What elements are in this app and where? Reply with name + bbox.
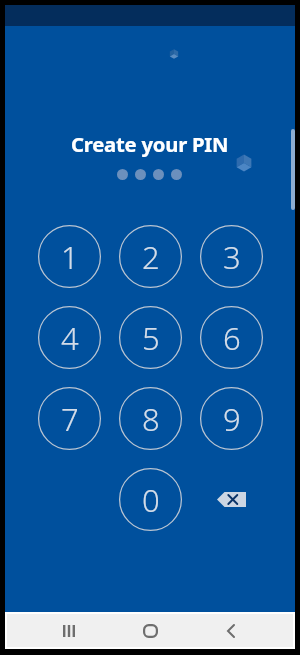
button[interactable]: Back (207, 614, 255, 647)
staticText: 6 (223, 317, 241, 359)
staticText: 2 (142, 236, 160, 278)
button[interactable]: 8 (110, 387, 191, 450)
button[interactable]: 1 (29, 225, 110, 288)
button[interactable]: 4 (29, 306, 110, 369)
staticText: 4 (61, 317, 79, 359)
staticText: Create your PIN (71, 130, 229, 158)
button[interactable]: 7 (29, 387, 110, 450)
staticText: 8 (142, 398, 160, 440)
button[interactable]: Recent apps (45, 614, 93, 647)
staticText: 3 (223, 236, 241, 278)
staticText: 1 (61, 236, 79, 278)
button[interactable]: Delete (191, 468, 272, 531)
staticText: 5 (142, 317, 160, 359)
button[interactable]: 3 (191, 225, 272, 288)
button[interactable]: 0 (110, 468, 191, 531)
button[interactable]: 2 (110, 225, 191, 288)
button[interactable]: 6 (191, 306, 272, 369)
button[interactable]: 5 (110, 306, 191, 369)
button[interactable]: Home (126, 614, 174, 647)
button[interactable]: 9 (191, 387, 272, 450)
staticText: 0 (142, 479, 160, 521)
staticText: 9 (223, 398, 241, 440)
staticText: 7 (61, 398, 79, 440)
